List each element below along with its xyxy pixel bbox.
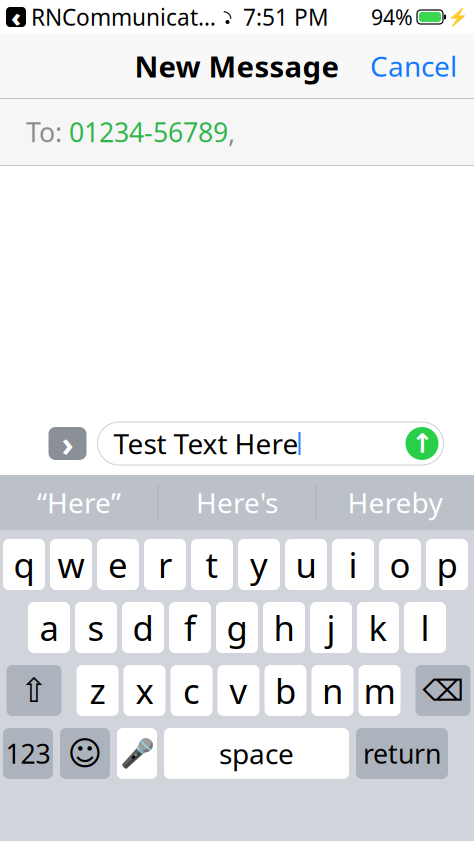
button[interactable]: More options (48, 427, 86, 460)
button[interactable]: v (217, 665, 259, 716)
button[interactable]: g (216, 602, 258, 653)
button[interactable]: u (285, 539, 327, 590)
staticText: l (420, 604, 429, 650)
staticText: RNCommunicat… (31, 2, 216, 32)
staticText: o (389, 541, 410, 587)
staticText: 🎤 (119, 737, 154, 769)
button[interactable]: s (75, 602, 117, 653)
staticText: “Here” (37, 484, 121, 521)
staticText: 94% (371, 3, 413, 31)
button[interactable]: w (50, 539, 92, 590)
staticText: i (348, 541, 357, 587)
button[interactable]: d (122, 602, 164, 653)
staticText: Cancel (370, 47, 457, 85)
button[interactable]: Shift (6, 665, 61, 716)
staticText: b (275, 667, 296, 713)
button[interactable]: e (97, 539, 139, 590)
staticText: To: (26, 114, 69, 150)
staticText: space (219, 735, 294, 772)
button[interactable]: Emoji (60, 728, 110, 779)
staticText: e (108, 541, 128, 587)
staticText: Hereby (347, 484, 442, 521)
button[interactable]: q (3, 539, 45, 590)
staticText: v (229, 667, 247, 713)
staticText: c (183, 667, 200, 713)
staticText: return (363, 736, 441, 771)
staticText: k (368, 604, 387, 650)
button[interactable]: z (76, 665, 118, 716)
button[interactable]: To: (0, 99, 474, 165)
staticText: d (132, 604, 153, 650)
staticText: ☺ (67, 735, 102, 772)
staticText: ⌫ (422, 674, 463, 707)
staticText: a (39, 604, 58, 650)
button[interactable]: b (264, 665, 306, 716)
button[interactable]: j (310, 602, 352, 653)
button[interactable]: x (123, 665, 165, 716)
staticText: w (57, 541, 84, 587)
button[interactable]: p (426, 539, 468, 590)
button[interactable]: n (311, 665, 353, 716)
staticText: y (250, 541, 268, 587)
staticText: ⇧ (20, 672, 48, 709)
staticText: n (322, 667, 343, 713)
staticText: t (205, 541, 218, 587)
button[interactable]: Hereby (316, 475, 473, 530)
button[interactable]: Delete (415, 665, 470, 716)
button[interactable]: f (169, 602, 211, 653)
button[interactable]: return (356, 728, 448, 779)
button[interactable]: i (332, 539, 374, 590)
button[interactable]: l (404, 602, 446, 653)
staticText: ‹ (11, 0, 21, 34)
button[interactable]: h (263, 602, 305, 653)
staticText: x (135, 667, 153, 713)
button[interactable]: c (170, 665, 212, 716)
button[interactable]: r (144, 539, 186, 590)
button[interactable]: Cancel (358, 37, 469, 95)
button[interactable]: a (28, 602, 70, 653)
staticText: h (273, 604, 294, 650)
button[interactable]: Dictation (117, 728, 157, 779)
staticText: Test Text Here (113, 425, 298, 462)
staticText: u (295, 541, 316, 587)
staticText: s (87, 604, 104, 650)
staticText: r (158, 541, 172, 587)
staticText: p (436, 541, 457, 587)
button[interactable]: “Here” (0, 475, 157, 530)
staticText: m (363, 667, 395, 713)
button[interactable]: m (358, 665, 400, 716)
staticText: z (89, 667, 105, 713)
button[interactable]: y (238, 539, 280, 590)
button[interactable]: space (164, 728, 349, 779)
staticText: 01234-56789 (69, 114, 228, 150)
button[interactable]: Here's (158, 475, 315, 530)
staticText: 7:51 PM (243, 2, 329, 32)
button[interactable]: 123 (3, 728, 53, 779)
staticText: Here's (196, 484, 278, 521)
staticText: f (184, 604, 196, 650)
staticText: g (226, 604, 247, 650)
staticText: 123 (5, 736, 50, 771)
staticText: ⚡ (447, 7, 469, 27)
staticText: ↑ (411, 428, 433, 459)
staticText: › (61, 421, 73, 466)
staticText: q (13, 541, 34, 587)
button[interactable]: o (379, 539, 421, 590)
staticText: New Message (134, 46, 339, 85)
button[interactable]: k (357, 602, 399, 653)
staticText: , (228, 114, 235, 150)
staticText: j (326, 604, 335, 650)
button[interactable]: t (191, 539, 233, 590)
staticText: ◝ (223, 6, 231, 28)
button[interactable]: Send (405, 427, 443, 460)
